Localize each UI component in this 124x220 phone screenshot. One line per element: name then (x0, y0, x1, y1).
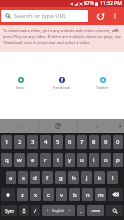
staticText: . (80, 207, 82, 215)
button[interactable]: j (81, 171, 92, 184)
button[interactable]: i (89, 153, 99, 167)
button[interactable]: 6 (65, 135, 75, 149)
button[interactable]: 5 (53, 135, 63, 149)
button[interactable]: More suggestions (116, 119, 124, 133)
button[interactable]: k (94, 171, 105, 184)
button[interactable]: u (77, 153, 87, 167)
staticText: @ (55, 121, 62, 131)
button[interactable]: 7 (77, 135, 87, 149)
button[interactable]: @ (39, 119, 77, 133)
button[interactable]: Vevo (0, 77, 41, 90)
staticText: 9 (104, 138, 108, 146)
button[interactable]: h (68, 171, 79, 184)
button[interactable]: 2 (14, 135, 25, 149)
staticText: d (33, 174, 37, 182)
staticText: w (17, 156, 22, 164)
staticText: 8 (92, 138, 96, 146)
staticText: To download a video, go to any website w… (3, 28, 121, 45)
staticText: .com (91, 208, 101, 213)
staticText: 1 (5, 138, 9, 146)
staticText: f (46, 174, 49, 182)
staticText: 4 (44, 138, 48, 146)
button[interactable]: g (55, 171, 66, 184)
button[interactable]: p (113, 153, 123, 167)
button[interactable]: More options (109, 10, 121, 22)
button[interactable]: a (6, 171, 16, 184)
button[interactable]: Search (106, 205, 123, 216)
button[interactable]: b (69, 188, 80, 201)
staticText: 7 (80, 138, 84, 146)
button[interactable]: y (65, 153, 75, 167)
button[interactable]: .com (87, 205, 104, 216)
button[interactable]: . (77, 205, 85, 216)
button[interactable]: t (53, 153, 63, 167)
staticText: / (34, 207, 37, 215)
button[interactable]: x (30, 188, 41, 201)
staticText: c (47, 191, 50, 199)
button[interactable]: m (95, 188, 106, 201)
button[interactable]: Close (113, 26, 120, 33)
button[interactable]: / (31, 205, 40, 216)
staticText: Search or type URL (14, 12, 67, 20)
staticText: g (59, 174, 63, 182)
button[interactable]: r (40, 153, 51, 167)
staticText: 87% (84, 0, 94, 7)
button[interactable]: z (17, 188, 28, 201)
button[interactable]: d (30, 171, 40, 184)
staticText: i (93, 156, 95, 164)
staticText: p (116, 156, 120, 164)
staticText: Facebook (53, 85, 71, 90)
staticText: 6 (68, 138, 72, 146)
staticText: r (44, 156, 47, 164)
staticText: 11:32 PM (100, 0, 122, 7)
button[interactable]: v (56, 188, 67, 201)
button[interactable]: Sym (1, 205, 17, 216)
staticText: u (80, 156, 84, 164)
button[interactable]: Reload (93, 9, 107, 23)
staticText: b (73, 191, 77, 199)
button[interactable]: 9 (101, 135, 111, 149)
button[interactable]: f (41, 77, 82, 90)
staticText: ✕ (114, 27, 119, 33)
staticText: 3 (31, 138, 35, 146)
staticText: 5 (56, 138, 60, 146)
staticText: . (96, 121, 98, 131)
button[interactable]: l (107, 171, 118, 184)
button[interactable]: Space (42, 205, 75, 216)
staticText: z (21, 191, 24, 199)
button[interactable]: Voice input (19, 205, 29, 216)
staticText: q (5, 156, 9, 164)
button[interactable]: s (18, 171, 28, 184)
button[interactable]: o (101, 153, 111, 167)
button[interactable]: n (82, 188, 93, 201)
button[interactable]: 8 (89, 135, 99, 149)
button[interactable]: 3 (27, 135, 38, 149)
button[interactable]: c (43, 188, 54, 201)
button[interactable]: w (14, 153, 25, 167)
button[interactable]: Twitter (82, 77, 123, 90)
staticText: t (57, 156, 60, 164)
staticText: e (31, 156, 35, 164)
button[interactable]: Search or type URL (1, 10, 88, 22)
button[interactable]: f (42, 171, 53, 184)
staticText: 2 (18, 138, 22, 146)
staticText: s (22, 174, 25, 182)
staticText: Twitter (96, 85, 109, 90)
staticText: Vevo (16, 85, 25, 90)
staticText: English (52, 208, 65, 213)
staticText: . (18, 121, 20, 131)
button[interactable]: Shift (1, 188, 15, 201)
staticText: h (72, 174, 76, 182)
staticText: l (112, 174, 114, 182)
staticText: Sym (5, 208, 14, 214)
staticText: n (86, 191, 90, 199)
button[interactable]: 1 (1, 135, 12, 149)
button[interactable]: e (27, 153, 38, 167)
button[interactable]: 0 (113, 135, 123, 149)
button[interactable]: 4 (40, 135, 51, 149)
button[interactable]: Backspace (108, 188, 123, 201)
button[interactable]: q (1, 153, 12, 167)
staticText: k (98, 174, 102, 182)
